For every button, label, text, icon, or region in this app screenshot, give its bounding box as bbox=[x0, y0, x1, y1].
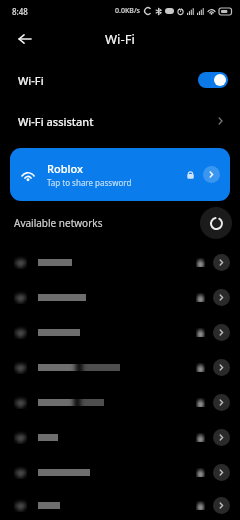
button[interactable]: Network details bbox=[0, 350, 240, 385]
button[interactable]: Network details bbox=[203, 166, 220, 183]
button[interactable]: Roblox bbox=[10, 148, 230, 201]
button[interactable]: Network details bbox=[0, 315, 240, 350]
staticText: 0.0KB/s bbox=[115, 6, 141, 16]
button[interactable]: Network details bbox=[0, 280, 240, 315]
button[interactable]: Wi-Fi assistant bbox=[0, 106, 240, 136]
button[interactable]: Network details bbox=[0, 245, 240, 280]
staticText: Available networks bbox=[14, 216, 103, 230]
button[interactable]: Network details bbox=[213, 429, 230, 446]
staticText: Wi-Fi assistant bbox=[18, 114, 94, 129]
button[interactable]: Network details bbox=[213, 359, 230, 376]
button[interactable]: Network details bbox=[0, 385, 240, 420]
staticText: Wi-Fi bbox=[18, 73, 44, 88]
button[interactable]: Network details bbox=[213, 394, 230, 411]
button[interactable]: Network details bbox=[213, 464, 230, 481]
button[interactable]: Network details bbox=[0, 455, 240, 490]
button[interactable]: Network details bbox=[213, 324, 230, 341]
staticText: Wi-Fi bbox=[105, 30, 135, 48]
button[interactable]: Wi-Fi bbox=[0, 62, 240, 98]
button[interactable]: Network details bbox=[213, 289, 230, 306]
staticText: 8:48 bbox=[12, 6, 28, 17]
button[interactable]: Network details bbox=[213, 497, 230, 514]
staticText: Tap to share password bbox=[47, 177, 132, 188]
button[interactable]: Network details bbox=[0, 420, 240, 455]
button[interactable]: Network details bbox=[0, 490, 240, 520]
button[interactable]: Refresh bbox=[200, 207, 232, 239]
button[interactable]: Back bbox=[10, 24, 40, 54]
button[interactable]: Network details bbox=[213, 254, 230, 271]
staticText: Roblox bbox=[47, 161, 83, 176]
